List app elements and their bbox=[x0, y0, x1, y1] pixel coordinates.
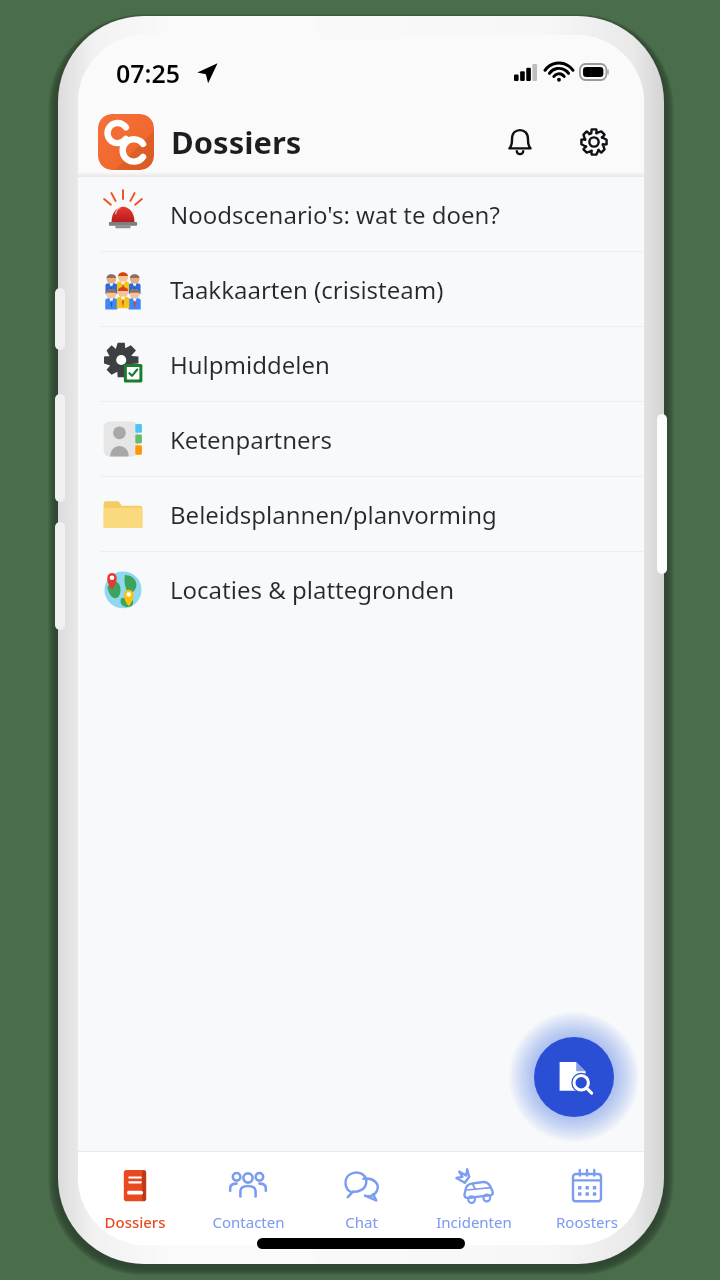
staticText: Taakkaarten (crisisteam) bbox=[170, 273, 444, 306]
button[interactable]: Notificaties bbox=[492, 114, 548, 170]
staticText: Dossiers bbox=[171, 121, 302, 163]
staticText: Beleidsplannen/planvorming bbox=[170, 498, 497, 531]
button[interactable]: Taakkaarten (crisisteam) bbox=[78, 252, 644, 326]
staticText: Dossiers bbox=[104, 1212, 166, 1232]
button[interactable]: Hulpmiddelen bbox=[78, 327, 644, 401]
button[interactable]: Beleidsplannen/planvorming bbox=[78, 477, 644, 551]
staticText: Roosters bbox=[556, 1212, 618, 1232]
button[interactable]: Dossiers bbox=[79, 1166, 191, 1232]
staticText: Hulpmiddelen bbox=[170, 348, 330, 381]
button[interactable]: Incidenten bbox=[418, 1166, 530, 1232]
button[interactable]: Instellingen bbox=[566, 114, 622, 170]
staticText: Locaties & plattegronden bbox=[170, 573, 454, 606]
button[interactable]: Dossier zoeken bbox=[534, 1037, 614, 1117]
button[interactable]: Contacten bbox=[192, 1166, 304, 1232]
button[interactable]: Noodscenario's: wat te doen? bbox=[78, 177, 644, 251]
button[interactable]: Ketenpartners bbox=[78, 402, 644, 476]
staticText: 07:25 bbox=[116, 56, 181, 90]
button[interactable]: Chat bbox=[305, 1166, 417, 1232]
staticText: Incidenten bbox=[436, 1212, 512, 1232]
button[interactable]: Locaties & plattegronden bbox=[78, 552, 644, 626]
staticText: Contacten bbox=[212, 1212, 285, 1232]
staticText: Chat bbox=[345, 1212, 378, 1232]
button[interactable]: Roosters bbox=[531, 1166, 643, 1232]
button[interactable] bbox=[98, 114, 154, 170]
staticText: Noodscenario's: wat te doen? bbox=[170, 198, 500, 231]
staticText: Ketenpartners bbox=[170, 423, 332, 456]
